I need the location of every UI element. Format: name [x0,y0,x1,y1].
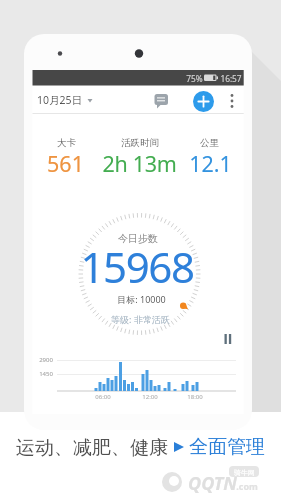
staticText: QQTN [188,471,237,496]
button[interactable]: 运动、减肥、健康 [16,434,265,460]
staticText: 18:00 [187,393,203,401]
staticText: 561 [47,149,84,178]
button[interactable] [224,88,240,113]
staticText: 活跃时间 [121,137,159,149]
staticText: 2900 [39,356,53,364]
button[interactable]: 10月25日 [32,87,88,113]
button[interactable] [219,329,237,349]
staticText: 今日步数 [118,232,158,245]
staticText: 75% [186,73,203,84]
staticText: 15968 [80,238,194,294]
staticText: 目标: 10000 [117,293,166,305]
button[interactable] [150,90,174,113]
staticText: 运动、减肥、健康 [16,434,173,460]
staticText: 10月25日 [37,93,83,107]
staticText: 大卡 [57,137,76,149]
staticText: 公里 [200,137,219,149]
staticText: 2h 13m [102,149,177,178]
staticText: 骑牛网 [234,468,255,477]
staticText: 12.1 [189,149,232,178]
staticText: 等级: 非常活跃 [111,313,170,325]
staticText: 16:57 [220,73,242,84]
staticText: 1450 [39,370,53,378]
staticText: 全面管理 [189,435,265,459]
staticText: .com [236,480,258,492]
staticText: 12:00 [142,393,158,401]
button[interactable] [193,91,214,112]
staticText: 06:00 [95,393,111,401]
